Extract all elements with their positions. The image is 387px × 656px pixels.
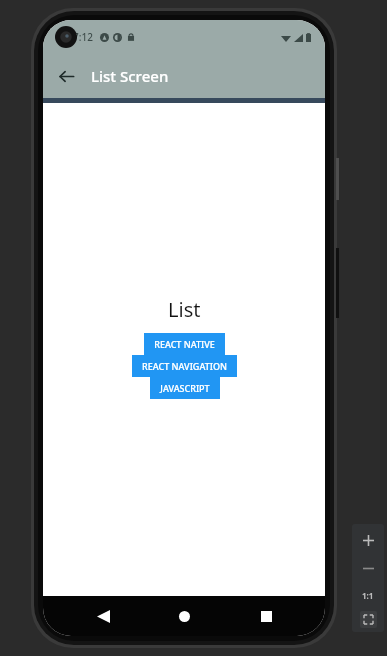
staticText: List Screen bbox=[91, 66, 169, 86]
staticText: 7:12 bbox=[73, 30, 93, 44]
button[interactable]: REACT NATIVE bbox=[144, 333, 225, 355]
button[interactable]: REACT NAVIGATION bbox=[132, 355, 237, 377]
staticText: REACT NAVIGATION bbox=[142, 360, 227, 372]
staticText: JAVASCRIPT bbox=[160, 382, 210, 394]
staticText: REACT NATIVE bbox=[154, 338, 215, 350]
button[interactable]: 1:1 bbox=[356, 583, 380, 607]
button[interactable]: Back bbox=[49, 59, 83, 93]
button[interactable]: Fit to screen bbox=[360, 611, 377, 628]
button[interactable]: Zoom in bbox=[356, 528, 380, 552]
button[interactable]: Back bbox=[81, 596, 125, 636]
button[interactable]: Home bbox=[162, 596, 206, 636]
staticText: List bbox=[168, 296, 201, 323]
button[interactable]: Recent apps bbox=[244, 596, 288, 636]
button[interactable]: Zoom out bbox=[356, 556, 380, 580]
button[interactable]: JAVASCRIPT bbox=[150, 377, 220, 399]
staticText: 1:1 bbox=[362, 590, 374, 601]
